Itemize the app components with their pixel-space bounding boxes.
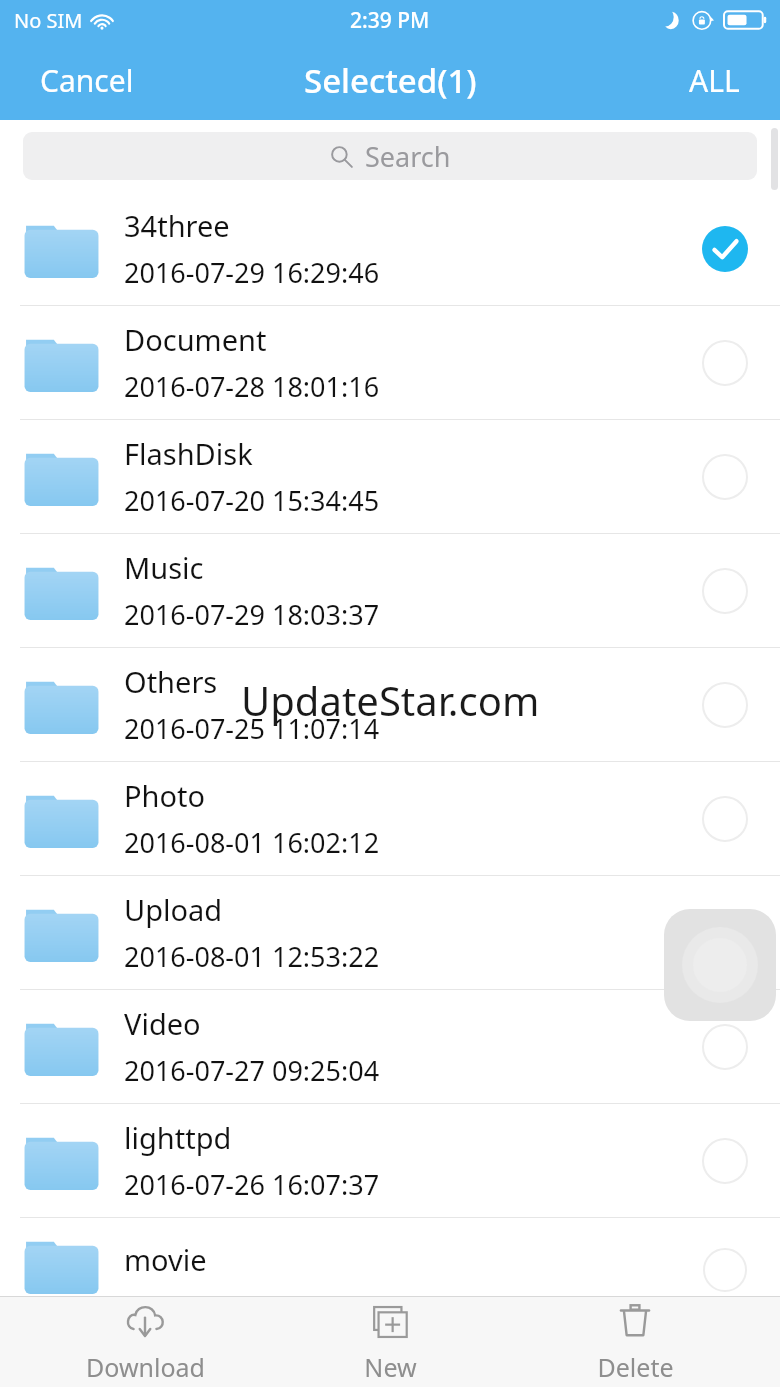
staticText: Upload [124, 890, 223, 929]
staticText: Cancel [40, 60, 134, 101]
staticText: Music [124, 548, 204, 587]
button[interactable]: Others [0, 648, 780, 761]
staticText: Search [365, 138, 451, 175]
staticText: 2:39 PM [350, 6, 430, 35]
staticText: Others [124, 662, 218, 701]
staticText: Delete [597, 1350, 674, 1384]
button[interactable]: 34three [0, 192, 780, 305]
button[interactable]: Select Video [670, 990, 780, 1103]
button[interactable]: Cancel [20, 48, 154, 113]
button[interactable]: Search [23, 132, 757, 180]
staticText: 2016-07-29 18:03:37 [124, 596, 380, 633]
staticText: ALL [689, 60, 740, 101]
staticText: 2016-08-01 12:53:22 [124, 938, 380, 975]
staticText: Photo [124, 776, 206, 815]
staticText: UpdateStar.com [241, 673, 540, 727]
button[interactable]: Upload [0, 876, 780, 989]
button[interactable]: Select Upload [670, 876, 780, 989]
staticText: Download [86, 1350, 205, 1384]
staticText: Selected(1) [304, 58, 477, 103]
staticText: 2016-07-27 09:25:04 [124, 1052, 380, 1089]
staticText: movie [124, 1240, 207, 1279]
staticText: Video [124, 1004, 201, 1043]
button[interactable]: Video [0, 990, 780, 1103]
button[interactable]: FlashDisk [0, 420, 780, 533]
button[interactable]: Delete [535, 1300, 735, 1384]
button[interactable]: Selected 34three [670, 192, 780, 305]
staticText: No SIM [14, 7, 83, 34]
button[interactable]: lighttpd [0, 1104, 780, 1217]
button[interactable]: ALL [669, 48, 760, 113]
staticText: 34three [124, 206, 230, 245]
staticText: 2016-07-20 15:34:45 [124, 482, 380, 519]
staticText: 2016-07-26 16:07:37 [124, 1166, 380, 1203]
staticText: 2016-07-28 18:01:16 [124, 368, 380, 405]
staticText: 2016-07-29 16:29:46 [124, 254, 380, 291]
staticText: New [364, 1350, 417, 1384]
button[interactable]: movie [0, 1218, 780, 1280]
staticText: lighttpd [124, 1118, 232, 1157]
button[interactable]: Download [45, 1300, 245, 1384]
button[interactable]: Photo [0, 762, 780, 875]
staticText: 2016-07-25 11:07:14 [124, 710, 380, 747]
button[interactable]: Music [0, 534, 780, 647]
staticText: FlashDisk [124, 434, 253, 473]
button[interactable]: Document [0, 306, 780, 419]
staticText: 2016-08-01 16:02:12 [124, 824, 380, 861]
staticText: Document [124, 320, 267, 359]
button[interactable]: New [290, 1300, 490, 1384]
button[interactable]: AssistiveTouch [664, 909, 776, 1021]
